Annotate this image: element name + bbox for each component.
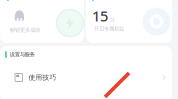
staticText: 开启专属权益 <box>94 25 124 32</box>
staticText: 解锁更多成就 <box>10 27 40 33</box>
button[interactable]: 使用技巧 <box>0 71 172 84</box>
button[interactable]: 我的成就 <box>0 0 84 43</box>
staticText: 使用技巧 <box>29 73 57 82</box>
staticText: 设置与服务 <box>10 51 35 58</box>
staticText: 分 <box>110 16 115 23</box>
staticText: 15 <box>92 6 108 25</box>
button[interactable]: 我的积分 <box>86 0 172 43</box>
